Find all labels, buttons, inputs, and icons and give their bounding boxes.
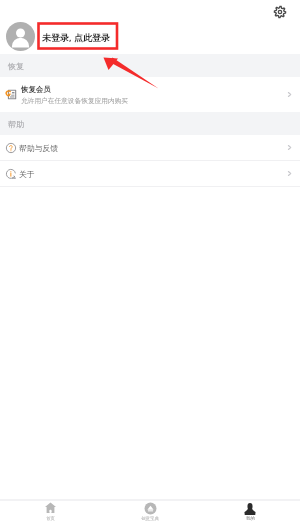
staticText: 我的 — [246, 516, 255, 522]
button[interactable]: 关于 — [0, 161, 300, 186]
button[interactable]: 恢复会员 — [0, 77, 300, 112]
button[interactable]: Settings — [269, 1, 291, 23]
button[interactable]: 帮助与反馈 — [0, 135, 300, 160]
staticText: 关于 — [19, 169, 35, 179]
button[interactable]: 未登录, 点此登录 — [6, 22, 110, 51]
staticText: 帮助 — [8, 119, 24, 129]
staticText: 允许用户在任意设备恢复应用内购买 — [21, 97, 128, 105]
staticText: 帮助与反馈 — [19, 143, 58, 153]
staticText: 创意宝典 — [141, 516, 159, 522]
staticText: 首页 — [46, 516, 55, 522]
button[interactable]: 首页 — [0, 501, 100, 523]
staticText: 恢复会员 — [21, 85, 51, 94]
staticText: 未登录, 点此登录 — [42, 31, 110, 43]
staticText: 恢复 — [8, 61, 24, 71]
button[interactable]: 创意宝典 — [100, 501, 200, 523]
button[interactable]: 我的 — [200, 501, 300, 523]
